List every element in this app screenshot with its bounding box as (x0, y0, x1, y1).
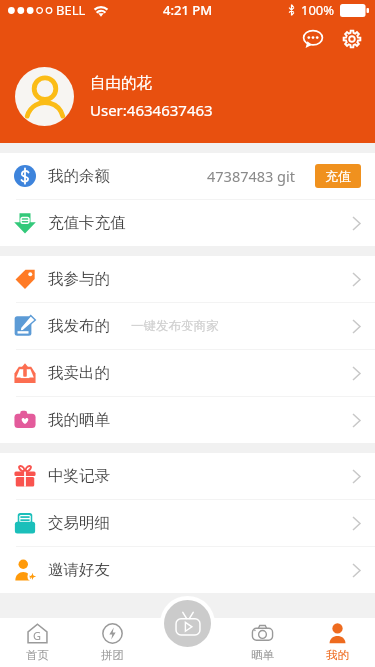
staticText: 4:21 PM (163, 1, 213, 19)
button[interactable]: Settings (336, 23, 368, 55)
staticText: 我卖出的 (48, 363, 110, 383)
button[interactable]: 邀请好友 (0, 547, 375, 593)
staticText: 自由的花 (90, 73, 152, 93)
button[interactable]: 充值 (315, 164, 361, 188)
button[interactable]: 我的晒单 (0, 397, 375, 443)
staticText: 我的晒单 (48, 410, 110, 430)
staticText: 47387483 git (207, 166, 296, 186)
staticText: 首页 (26, 648, 49, 662)
button[interactable]: 我的余额 (0, 153, 375, 199)
button[interactable]: Messages (297, 23, 329, 55)
staticText: 我的余额 (48, 166, 110, 186)
button[interactable]: G (0, 618, 75, 667)
staticText: 我发布的 (48, 316, 110, 336)
button[interactable]: 交易明细 (0, 500, 375, 546)
button[interactable]: 自由的花 (15, 67, 375, 126)
button[interactable]: 充值卡充值 (0, 200, 375, 246)
button[interactable]: 中奖记录 (0, 453, 375, 499)
button[interactable]: 我参与的 (0, 256, 375, 302)
button[interactable]: 我发布的 (0, 303, 375, 349)
button[interactable]: 拼团 (75, 618, 150, 667)
button[interactable]: 我的 (300, 618, 375, 667)
staticText: 我参与的 (48, 269, 110, 289)
staticText: 中奖记录 (48, 466, 110, 486)
staticText: 100% (301, 1, 335, 19)
staticText: BELL (56, 1, 86, 19)
staticText: 我的 (326, 648, 349, 662)
staticText: User:4634637463 (90, 100, 213, 120)
staticText: 晒单 (251, 648, 274, 662)
button[interactable]: Live (164, 600, 211, 647)
staticText: 邀请好友 (48, 560, 110, 580)
button[interactable]: 我卖出的 (0, 350, 375, 396)
button[interactable]: 晒单 (225, 618, 300, 667)
staticText: 充值卡充值 (48, 213, 126, 233)
staticText: G (33, 628, 42, 643)
staticText: 充值 (325, 168, 351, 184)
staticText: 交易明细 (48, 513, 110, 533)
staticText: 拼团 (101, 648, 124, 662)
staticText: 一键发布变商家 (131, 318, 219, 334)
